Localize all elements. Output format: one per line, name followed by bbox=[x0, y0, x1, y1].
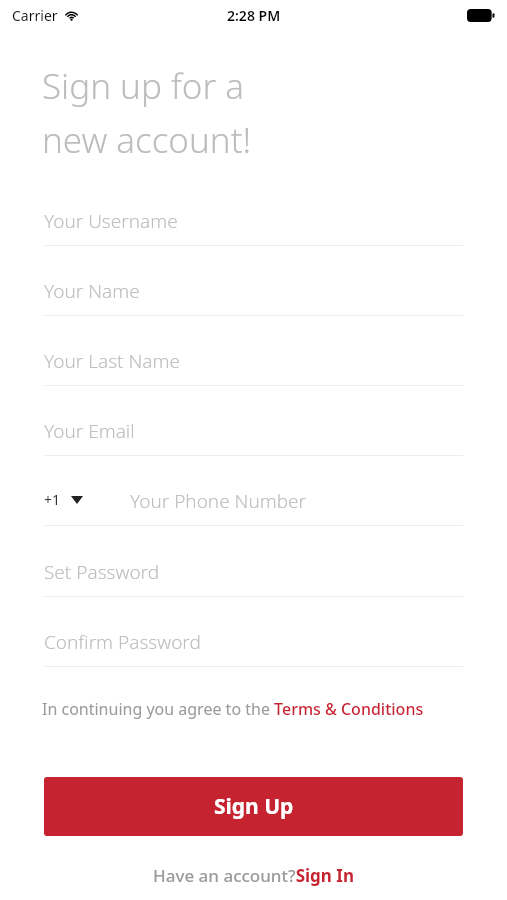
button[interactable]: +1 bbox=[42, 486, 85, 513]
staticText: Have an account?Sign In bbox=[153, 864, 354, 887]
staticText: new account! bbox=[42, 116, 252, 164]
button[interactable]: Set Password bbox=[0, 545, 507, 615]
staticText: Your Phone Number bbox=[130, 488, 307, 514]
staticText: In continuing you agree to the Terms & C… bbox=[42, 698, 424, 720]
staticText: Carrier bbox=[12, 6, 58, 25]
button[interactable]: Sign Up bbox=[44, 777, 463, 836]
button[interactable]: Your Email bbox=[0, 404, 507, 474]
staticText: Set Password bbox=[44, 559, 160, 585]
staticText: Your Email bbox=[44, 418, 135, 444]
button[interactable]: Your Name bbox=[0, 264, 507, 334]
staticText: Your Last Name bbox=[44, 348, 180, 374]
button[interactable]: In continuing you agree to the Terms & C… bbox=[42, 698, 442, 720]
button[interactable]: Confirm Password bbox=[0, 615, 507, 685]
button[interactable]: Have an account?Sign In bbox=[143, 861, 364, 890]
button[interactable]: Your Last Name bbox=[0, 334, 507, 404]
staticText: +1 bbox=[44, 490, 61, 509]
button[interactable]: Your Phone Number bbox=[130, 474, 463, 525]
staticText: 2:28 PM bbox=[227, 6, 281, 25]
staticText: Your Username bbox=[44, 208, 178, 234]
staticText: Your Name bbox=[44, 278, 140, 304]
button[interactable]: Your Username bbox=[0, 194, 507, 264]
staticText: Sign Up bbox=[214, 792, 294, 821]
staticText: Sign up for a bbox=[42, 62, 245, 110]
staticText: Confirm Password bbox=[44, 629, 201, 655]
other: Select country code bbox=[71, 496, 83, 504]
